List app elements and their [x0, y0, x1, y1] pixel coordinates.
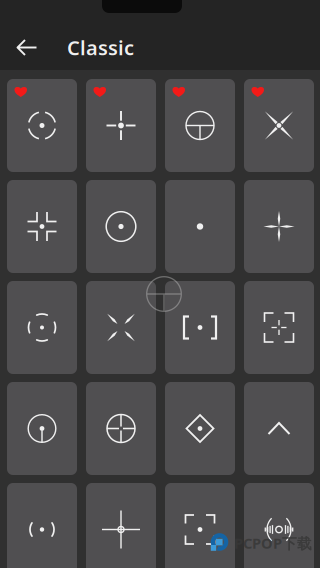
button[interactable]: Reticle style 18 [86, 483, 156, 568]
button[interactable]: Reticle style 12 [244, 281, 314, 374]
button[interactable]: Reticle style 14 [86, 382, 156, 475]
button[interactable]: Reticle style 19 [165, 483, 235, 568]
button[interactable]: Reticle style 17 [7, 483, 77, 568]
button[interactable]: Reticle style 2 [86, 79, 156, 172]
button[interactable]: Reticle style 11 [165, 281, 235, 374]
button[interactable]: Back [7, 25, 47, 69]
button[interactable]: Reticle style 15 [165, 382, 235, 475]
button[interactable]: Reticle style 3 [165, 79, 235, 172]
staticText: PCPOP下载 [234, 533, 312, 553]
button[interactable]: Reticle style 16 [244, 382, 314, 475]
button[interactable]: Reticle style 20 [244, 483, 314, 568]
button[interactable]: Reticle style 7 [165, 180, 235, 273]
staticText: Classic [67, 34, 134, 61]
button[interactable]: Reticle style 8 [244, 180, 314, 273]
button[interactable]: Reticle style 10 [86, 281, 156, 374]
button[interactable]: Reticle style 1 [7, 79, 77, 172]
button[interactable]: Reticle style 5 [7, 180, 77, 273]
button[interactable]: Reticle style 4 [244, 79, 314, 172]
button[interactable]: Reticle style 9 [7, 281, 77, 374]
button[interactable]: Reticle style 13 [7, 382, 77, 475]
button[interactable]: Reticle style 6 [86, 180, 156, 273]
